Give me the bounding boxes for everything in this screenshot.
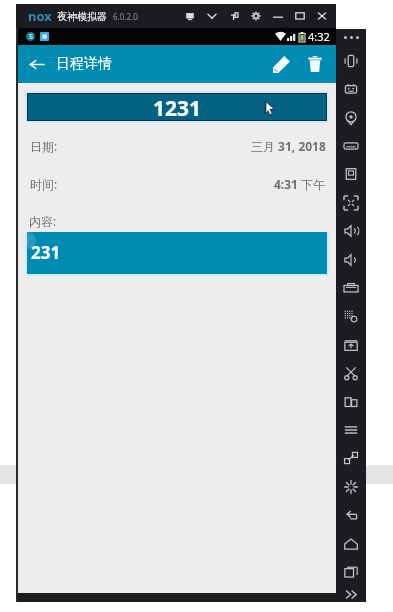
staticText: 时间: <box>30 176 58 192</box>
staticText: 三月 31, 2018 <box>251 138 326 154</box>
button[interactable]: Multi play <box>336 302 366 330</box>
button[interactable]: Menu <box>336 416 366 444</box>
button[interactable]: 231 <box>27 232 327 274</box>
button[interactable]: Volume up <box>336 217 366 245</box>
staticText: 夜神模拟器 <box>57 10 107 23</box>
button[interactable]: Shake <box>336 47 366 75</box>
staticText: 日程详情 <box>56 55 112 73</box>
staticText: 231 <box>31 241 61 264</box>
button[interactable]: Keyboard <box>336 75 366 103</box>
staticText: nox <box>28 7 52 25</box>
button[interactable]: Sparkle <box>336 473 366 501</box>
button[interactable]: SD card <box>336 160 366 188</box>
button[interactable]: Minimize <box>267 4 289 28</box>
button[interactable]: Install apk <box>336 331 366 359</box>
button[interactable]: 时间: <box>30 176 326 192</box>
button[interactable]: Home <box>336 530 366 558</box>
button[interactable]: 1231 <box>28 94 326 120</box>
staticText: 内容: <box>29 213 57 229</box>
button[interactable]: Virtual key <box>336 132 366 160</box>
button[interactable]: Recents <box>336 558 366 586</box>
button[interactable]: Screenshot <box>336 388 366 416</box>
button[interactable]: Share <box>336 444 366 472</box>
staticText: 1231 <box>153 94 202 120</box>
button[interactable]: Edit <box>264 45 298 83</box>
button[interactable]: Back <box>18 45 54 83</box>
button[interactable]: Volume down <box>336 246 366 274</box>
staticText: 4:31 下午 <box>274 176 326 192</box>
button[interactable]: More options <box>336 30 366 44</box>
button[interactable]: Expand <box>336 587 366 601</box>
staticText: S <box>29 32 33 41</box>
button[interactable]: Cut <box>336 359 366 387</box>
button[interactable]: Close <box>311 4 333 28</box>
button[interactable]: Full screen <box>336 189 366 217</box>
button[interactable]: Menu <box>201 4 223 28</box>
button[interactable]: Settings <box>245 4 267 28</box>
button[interactable]: Back <box>336 501 366 529</box>
button[interactable]: Maximize <box>289 4 311 28</box>
button[interactable]: Delete <box>298 45 332 83</box>
staticText: 6.0.2.0 <box>113 11 138 22</box>
staticText: 4:32 <box>308 29 330 44</box>
button[interactable]: Multi instance <box>179 4 201 28</box>
button[interactable]: Location <box>336 104 366 132</box>
button[interactable]: 日期: <box>30 138 326 154</box>
staticText: 日期: <box>30 138 58 154</box>
button[interactable]: Always on top <box>223 4 245 28</box>
button[interactable]: Record <box>336 274 366 302</box>
